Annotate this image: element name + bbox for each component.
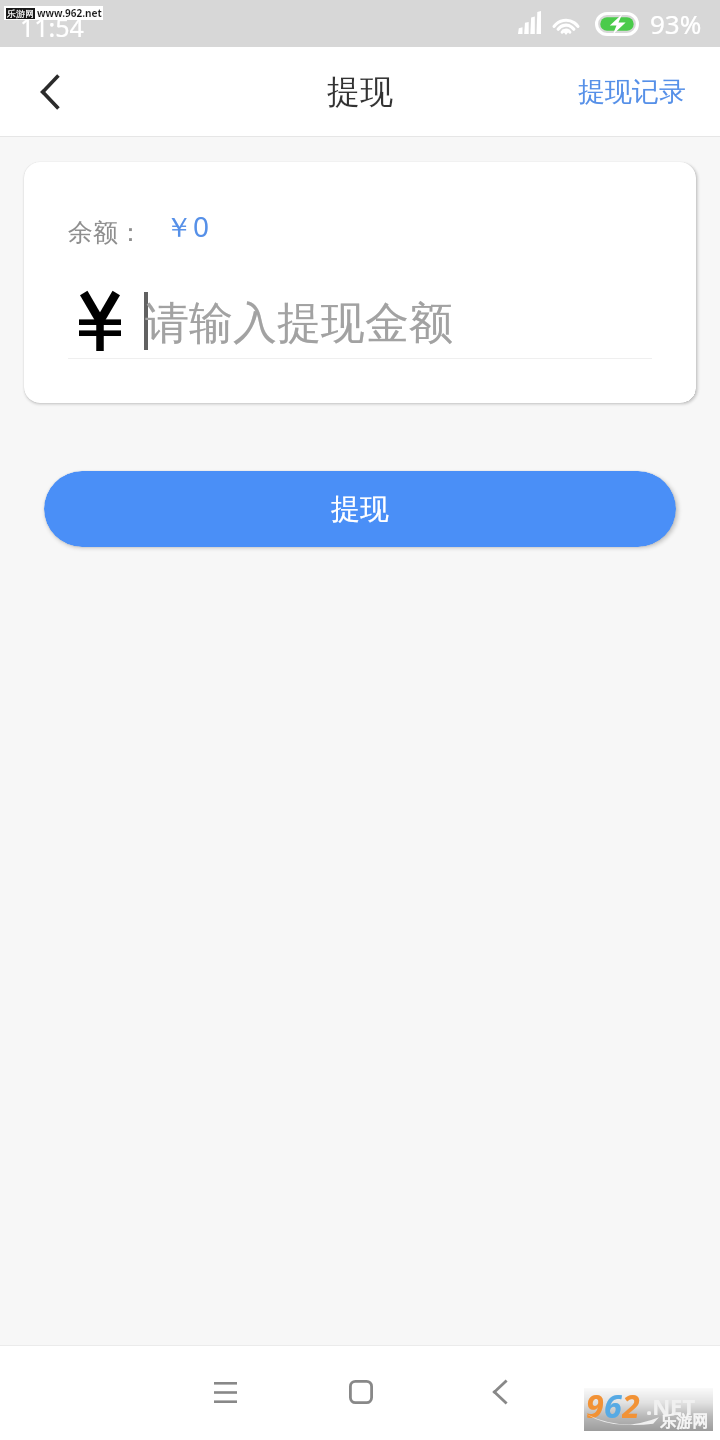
button[interactable]: Back [14, 56, 86, 128]
staticText: 乐游网 [7, 8, 34, 19]
staticText: 93% [650, 6, 702, 41]
button[interactable]: Menu [185, 1352, 265, 1432]
staticText: 请输入提现金额 [145, 296, 453, 351]
staticText: 6 [604, 1384, 622, 1427]
button[interactable]: Home [321, 1352, 401, 1432]
staticText: 余额： [68, 217, 143, 248]
staticText: 提现记录 [578, 75, 686, 109]
button[interactable]: Back [460, 1352, 540, 1432]
staticText: 提现 [331, 491, 389, 528]
staticText: 2 [622, 1384, 640, 1427]
button[interactable]: 提现 [44, 471, 676, 547]
staticText: 9 [586, 1384, 604, 1427]
staticText: 提现 [327, 71, 393, 113]
staticText: .NET [646, 1391, 696, 1421]
staticText: 乐游网 [660, 1412, 708, 1432]
button[interactable]: 请输入提现金额 [134, 286, 652, 358]
button[interactable]: 提现记录 [558, 59, 720, 125]
staticText: ￥0 [165, 207, 210, 245]
staticText: www.962.net [37, 6, 102, 20]
staticText: 11:54 [20, 10, 84, 44]
